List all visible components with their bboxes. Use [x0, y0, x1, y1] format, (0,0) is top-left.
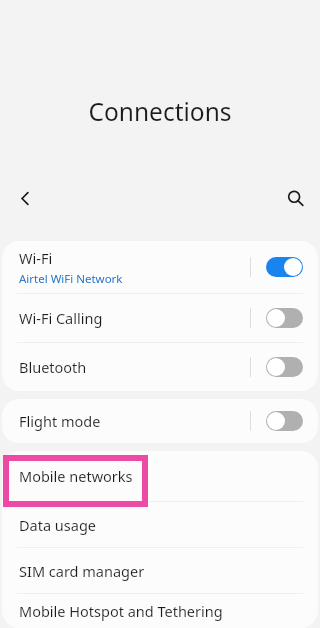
button[interactable]: Turn on — [266, 308, 303, 328]
button[interactable]: Wi-Fi — [2, 241, 318, 293]
staticText: Mobile networks — [19, 466, 133, 486]
button[interactable]: Turn off — [266, 257, 303, 277]
button[interactable]: Turn on — [266, 411, 303, 431]
button[interactable]: Mobile networks — [2, 451, 318, 501]
button[interactable]: Wi-Fi Calling — [2, 294, 318, 342]
staticText: Connections — [0, 95, 320, 128]
button[interactable]: Flight mode — [2, 399, 318, 443]
staticText: Flight mode — [19, 411, 101, 431]
staticText: Airtel WiFi Network — [19, 271, 123, 287]
staticText: Mobile Hotspot and Tethering — [19, 601, 223, 621]
button[interactable]: SIM card manager — [2, 548, 318, 593]
button[interactable]: Bluetooth — [2, 343, 318, 391]
button[interactable]: Mobile Hotspot and Tethering — [2, 594, 318, 628]
staticText: Bluetooth — [19, 357, 87, 377]
button[interactable]: Turn on — [266, 357, 303, 377]
button[interactable]: Search — [275, 178, 315, 218]
staticText: Data usage — [19, 515, 96, 535]
button[interactable]: Data usage — [2, 502, 318, 547]
staticText: Wi-Fi — [19, 248, 53, 268]
button[interactable]: Back — [5, 178, 45, 218]
staticText: Wi-Fi Calling — [19, 308, 103, 328]
staticText: SIM card manager — [19, 561, 145, 581]
